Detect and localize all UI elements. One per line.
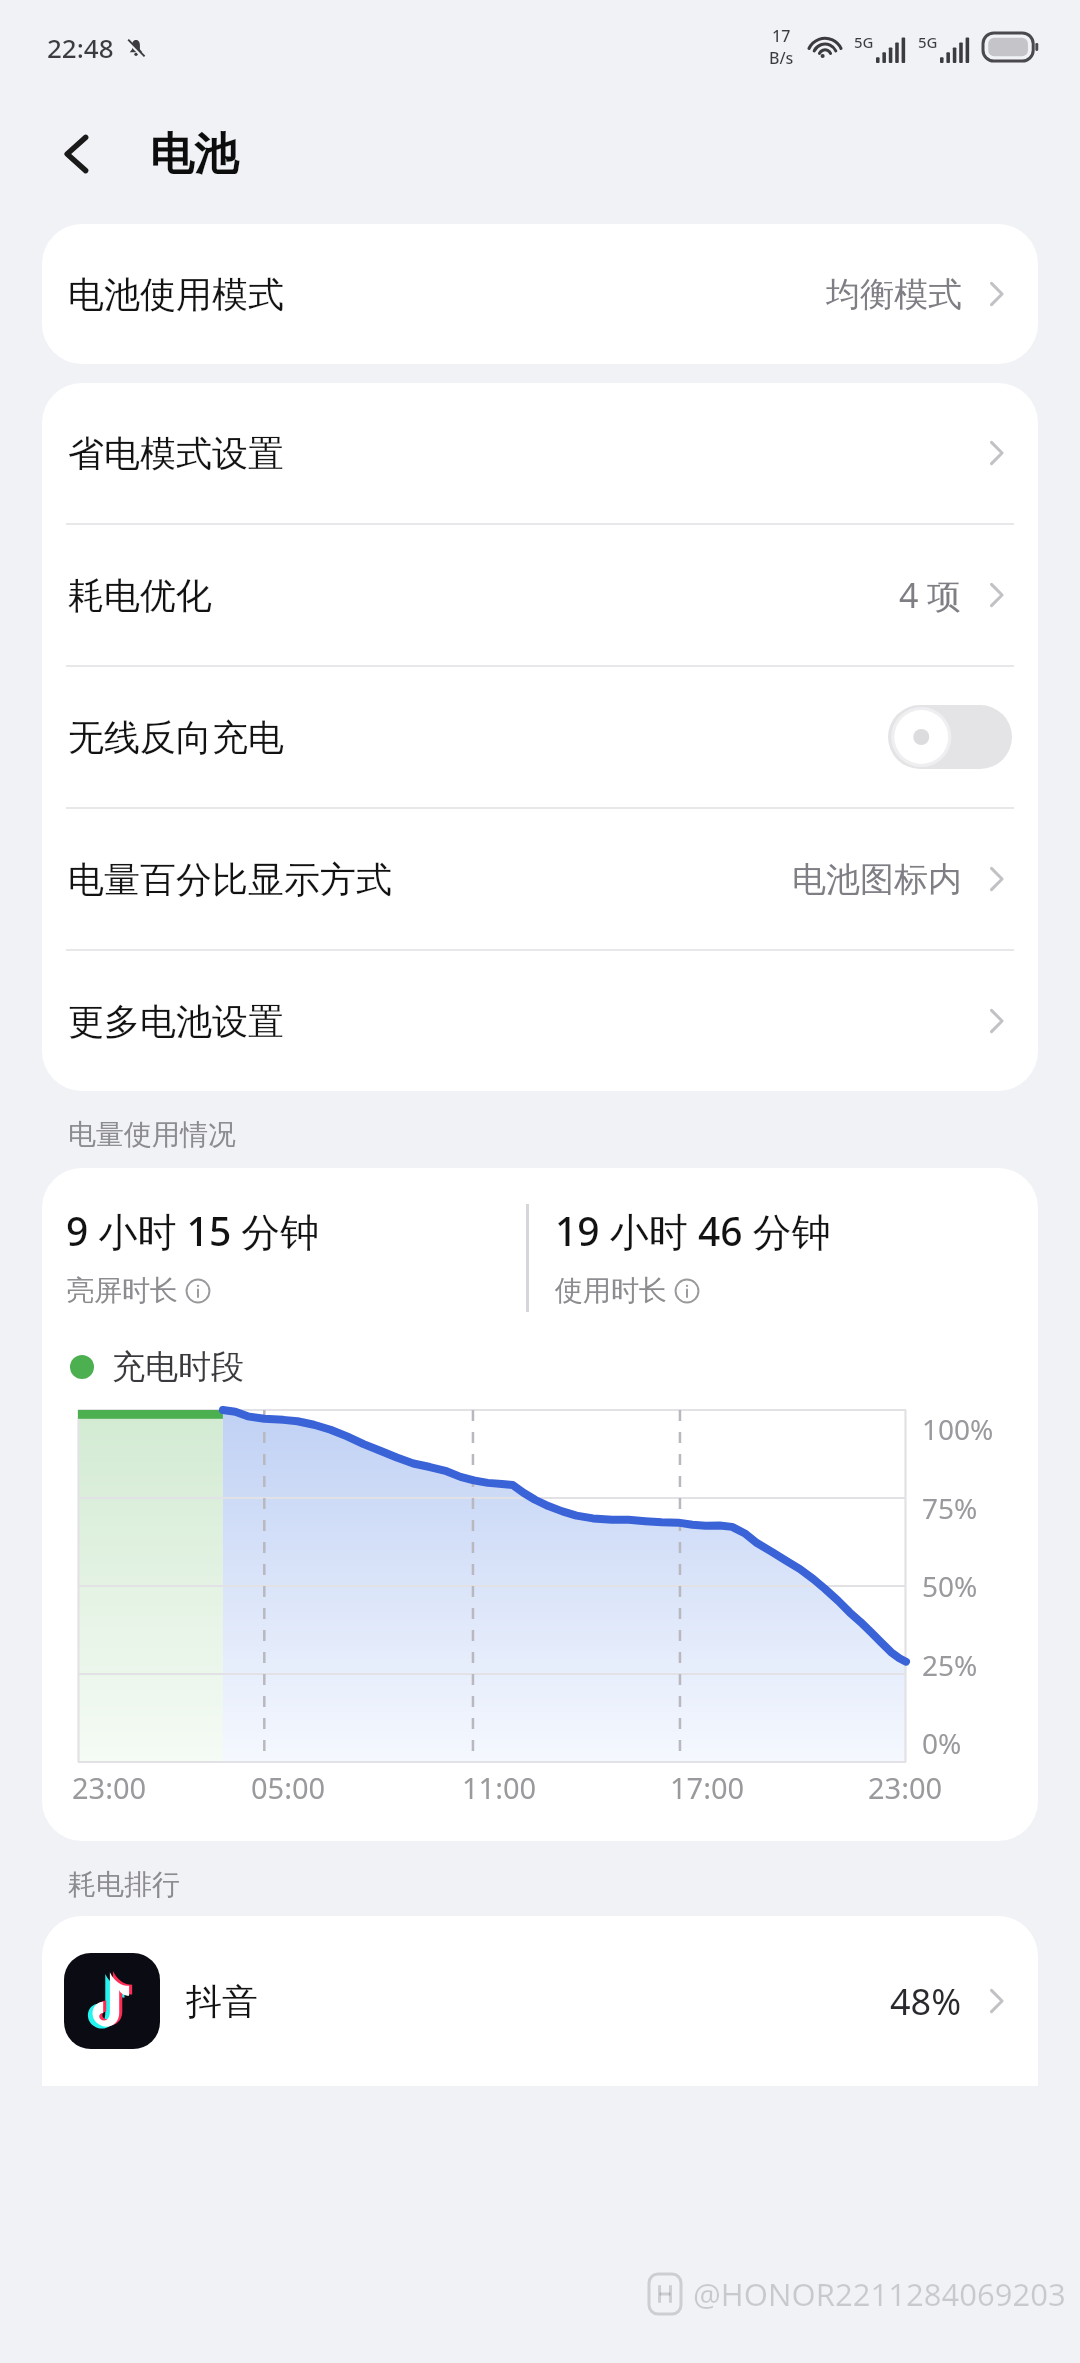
button[interactable]: 耗电优化	[42, 525, 1038, 665]
staticText: 电池图标内	[792, 858, 962, 901]
button[interactable]: 电量百分比显示方式	[42, 809, 1038, 949]
button[interactable]: 省电模式设置	[42, 383, 1038, 523]
staticText: 电量使用情况	[68, 1117, 236, 1152]
staticText: 更多电池设置	[68, 999, 284, 1044]
staticText: 25%	[922, 1646, 978, 1684]
staticText: 使用时长	[555, 1273, 667, 1308]
button[interactable]: 无线反向充电	[42, 667, 1038, 807]
staticText: 5G	[918, 32, 938, 52]
staticText: 抖音	[186, 1979, 258, 2024]
staticText: 5G	[854, 32, 874, 52]
staticText: 17:00	[670, 1768, 745, 1807]
staticText: 75%	[922, 1489, 978, 1527]
staticText: 50%	[922, 1567, 978, 1605]
staticText: 23:00	[72, 1768, 147, 1807]
staticText: 17	[772, 25, 791, 47]
button[interactable]: 更多电池设置	[42, 951, 1038, 1091]
button[interactable]: 抖音	[42, 1916, 1038, 2086]
staticText: @HONOR2211284069203	[693, 2273, 1066, 2315]
staticText: 23:00	[868, 1768, 943, 1807]
staticText: 电池使用模式	[68, 272, 284, 317]
staticText: 电池	[150, 127, 238, 182]
staticText: 4 项	[899, 572, 962, 618]
staticText: 0%	[922, 1724, 962, 1762]
staticText: 均衡模式	[826, 273, 962, 316]
staticText: 19 小时 46 分钟	[555, 1204, 831, 1257]
staticText: 充电时段	[112, 1346, 244, 1388]
staticText: 22:48	[47, 30, 114, 65]
staticText: 无线反向充电	[68, 715, 284, 760]
button[interactable]: Back	[46, 122, 110, 186]
button[interactable]: 电池使用模式	[42, 224, 1038, 364]
staticText: 亮屏时长	[66, 1273, 178, 1308]
staticText: 100%	[922, 1410, 994, 1448]
staticText: 电量百分比显示方式	[68, 857, 392, 902]
staticText: 11:00	[462, 1768, 537, 1807]
staticText: B/s	[769, 47, 794, 69]
staticText: 48%	[890, 1977, 962, 2026]
staticText: 9 小时 15 分钟	[66, 1204, 320, 1257]
staticText: 耗电优化	[68, 573, 212, 618]
staticText: 耗电排行	[68, 1867, 180, 1902]
button[interactable]: Wireless reverse charging	[888, 705, 1012, 769]
staticText: 省电模式设置	[68, 431, 284, 476]
staticText: 05:00	[251, 1768, 326, 1807]
